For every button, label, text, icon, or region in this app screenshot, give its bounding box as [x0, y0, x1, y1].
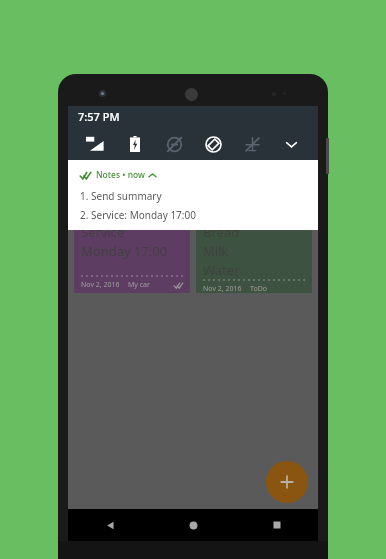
button[interactable]: Add note	[266, 461, 308, 503]
staticText: My car	[128, 280, 150, 290]
staticText: Bread	[203, 223, 240, 241]
staticText: Nov 2, 2016	[81, 280, 120, 290]
button[interactable]: Quick setting	[122, 131, 148, 157]
button[interactable]: Bread	[196, 221, 312, 293]
button[interactable]: Quick setting	[239, 131, 265, 157]
button[interactable]: Quick setting	[82, 131, 108, 157]
button[interactable]: Back	[68, 509, 152, 541]
staticText: 2. Service: Monday 17:00	[80, 208, 196, 222]
staticText: ToDo	[250, 284, 267, 293]
staticText: Notes • now	[96, 169, 145, 181]
button[interactable]: Home	[152, 509, 235, 541]
staticText: 1. Send summary	[80, 189, 162, 203]
staticText: Service	[81, 223, 125, 241]
staticText: 7:57 PM	[78, 109, 120, 124]
button[interactable]: Service	[74, 221, 190, 293]
button[interactable]: Recents	[235, 509, 318, 541]
staticText: Monday 17:00	[81, 242, 168, 260]
button[interactable]: Quick setting	[200, 131, 226, 157]
button[interactable]: Notes • now	[68, 160, 318, 230]
staticText: Water	[203, 261, 240, 279]
staticText: Milk	[203, 242, 229, 260]
button[interactable]: Quick setting	[161, 131, 187, 157]
button[interactable]: Quick setting	[278, 131, 304, 157]
staticText: Nov 2, 2016	[203, 284, 242, 293]
